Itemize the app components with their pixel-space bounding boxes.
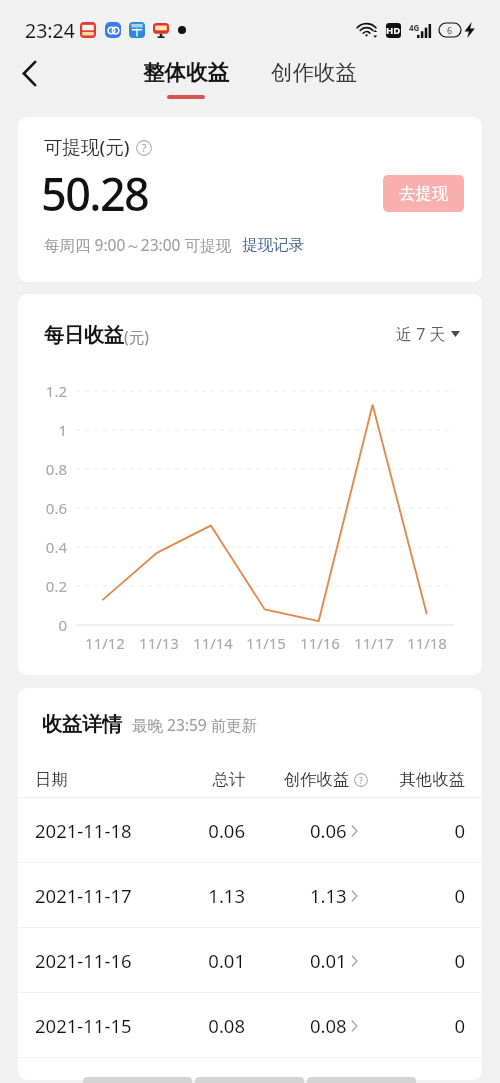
staticText: 近 7 天 <box>396 323 446 345</box>
button[interactable]: 2021-11-17 <box>18 863 482 927</box>
button[interactable]: 提现记录 <box>242 235 304 255</box>
staticText: 11/12 <box>85 633 125 653</box>
staticText: 0.06 <box>208 818 245 843</box>
button[interactable]: 2021-11-15 <box>18 993 482 1057</box>
staticText: 2021-11-18 <box>35 818 132 843</box>
button[interactable] <box>195 1077 304 1083</box>
staticText: 1.13 <box>208 883 245 908</box>
staticText: 11/13 <box>139 633 179 653</box>
staticText: 50.28 <box>41 163 149 224</box>
staticText: 11/18 <box>407 633 447 653</box>
staticText: 0 <box>454 883 465 908</box>
staticText: 0.01 <box>310 948 347 973</box>
staticText: 每日收益 <box>44 323 124 348</box>
staticText: 1.2 <box>45 381 67 401</box>
staticText: 整体收益 <box>143 59 229 86</box>
staticText: 0.08 <box>208 1013 245 1038</box>
staticText: 2021-11-17 <box>35 883 132 908</box>
staticText: 总计 <box>212 769 245 790</box>
staticText: 创作收益 <box>271 59 357 86</box>
button[interactable]: 去提现 <box>383 175 464 212</box>
button[interactable]: 创作收益 <box>260 48 368 117</box>
staticText: 11/15 <box>246 633 286 653</box>
staticText: 2021-11-15 <box>35 1013 132 1038</box>
staticText: 0 <box>454 818 465 843</box>
staticText: 0.8 <box>45 459 67 479</box>
staticText: 0 <box>58 615 67 635</box>
staticText: 每周四 9:00～23:00 可提现 <box>44 234 231 255</box>
staticText: 0.2 <box>45 576 67 596</box>
staticText: 0 <box>454 948 465 973</box>
staticText: 11/14 <box>193 633 233 653</box>
button[interactable]: 整体收益 <box>132 48 240 117</box>
staticText: 最晚 23:59 前更新 <box>132 714 258 735</box>
staticText: 11/17 <box>354 633 394 653</box>
staticText: 0.06 <box>310 818 347 843</box>
staticText: 1 <box>58 420 67 440</box>
staticText: ? <box>142 141 147 155</box>
staticText: 其他收益 <box>399 769 465 790</box>
button[interactable]: 2021-11-16 <box>18 928 482 992</box>
button[interactable]: 2021-11-18 <box>18 798 482 862</box>
staticText: 11/16 <box>300 633 340 653</box>
staticText: ? <box>359 775 363 786</box>
staticText: HD <box>386 24 401 37</box>
staticText: 去提现 <box>399 183 449 204</box>
staticText: 2021-11-16 <box>35 948 132 973</box>
staticText: 4G <box>409 22 420 33</box>
staticText: 0.08 <box>310 1013 347 1038</box>
button[interactable]: Back <box>5 49 53 97</box>
button[interactable] <box>307 1077 416 1083</box>
button[interactable] <box>83 1077 192 1083</box>
staticText: 提现记录 <box>242 235 304 255</box>
staticText: 日期 <box>35 769 68 790</box>
button[interactable]: 近 7 天 <box>396 323 460 345</box>
staticText: 0.6 <box>45 498 67 518</box>
staticText: 可提现(元) <box>44 134 130 159</box>
staticText: 0 <box>454 1013 465 1038</box>
staticText: 收益详情 <box>42 712 122 737</box>
staticText: (元) <box>124 326 149 347</box>
staticText: 0.01 <box>208 948 245 973</box>
staticText: 23:24 <box>25 17 75 44</box>
staticText: 0.4 <box>45 537 67 557</box>
staticText: 创作收益 <box>284 769 350 790</box>
staticText: 6 <box>447 24 453 36</box>
staticText: 1.13 <box>310 883 347 908</box>
